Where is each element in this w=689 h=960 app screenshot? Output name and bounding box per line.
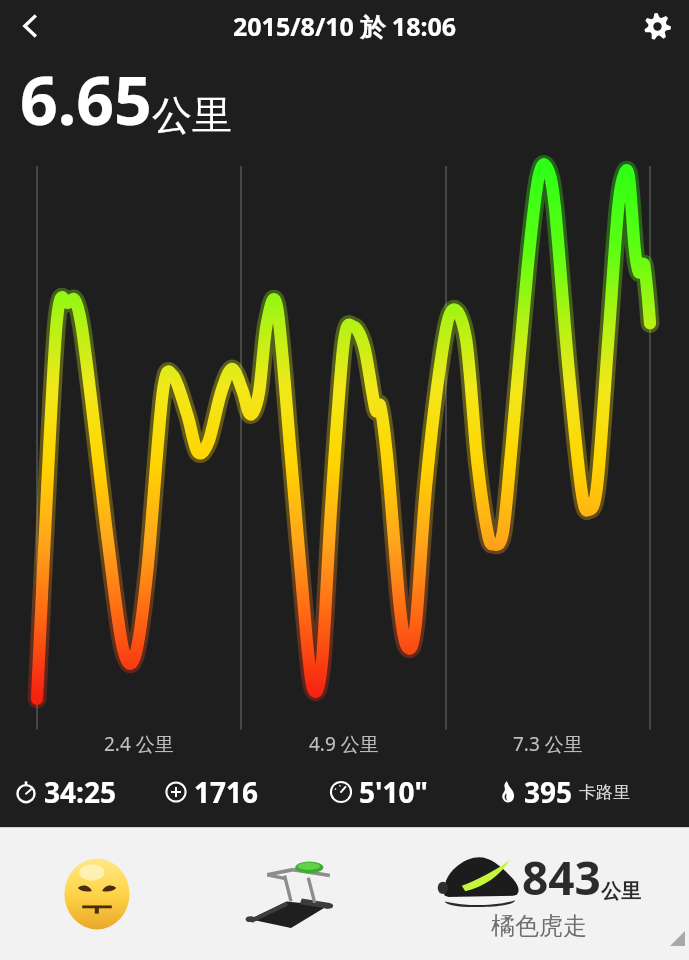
- staticText: 公里: [601, 879, 641, 904]
- staticText: 2015/8/10 於 18:06: [233, 9, 457, 43]
- staticText: 1716: [194, 773, 259, 811]
- staticText: 卡路里: [579, 782, 630, 803]
- staticText: 34:25: [44, 773, 116, 811]
- staticText: 6.65: [20, 54, 152, 144]
- staticText: 395: [524, 773, 573, 811]
- button[interactable]: Back: [6, 2, 54, 50]
- button[interactable]: 395: [494, 757, 689, 827]
- staticText: 843: [522, 846, 601, 909]
- button[interactable]: Mood: [0, 827, 194, 960]
- button[interactable]: 1716: [164, 757, 329, 827]
- staticText: 7.3 公里: [513, 731, 583, 757]
- button[interactable]: 34:25: [14, 757, 164, 827]
- staticText: 5'10": [359, 773, 428, 811]
- button[interactable]: Treadmill: [194, 827, 388, 960]
- staticText: 4.9 公里: [309, 731, 379, 757]
- staticText: 2.4 公里: [104, 731, 174, 757]
- button[interactable]: Settings: [633, 2, 681, 50]
- staticText: 公里: [152, 90, 232, 140]
- button[interactable]: 843: [388, 827, 689, 960]
- button[interactable]: 5'10": [329, 757, 494, 827]
- staticText: 橘色虎走: [491, 911, 587, 941]
